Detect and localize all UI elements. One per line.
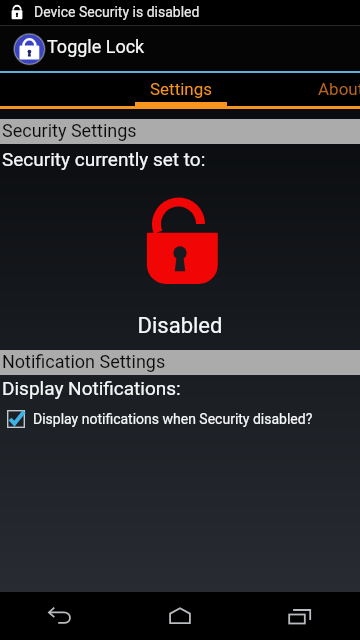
staticText: About: [318, 79, 360, 99]
button[interactable]: Home: [120, 592, 240, 640]
staticText: Notification Settings: [2, 351, 166, 372]
staticText: Security Settings: [2, 120, 137, 141]
button[interactable]: Display notifications when Security disa…: [0, 406, 360, 431]
button[interactable]: Settings: [102, 73, 261, 106]
staticText: Disabled: [0, 313, 360, 339]
staticText: Display Notifications:: [2, 377, 181, 399]
staticText: Toggle Lock: [47, 36, 145, 57]
staticText: Settings: [150, 79, 213, 99]
button[interactable]: About: [261, 73, 360, 106]
staticText: Security currently set to:: [2, 148, 206, 170]
button[interactable]: Toggle Lock: [0, 26, 360, 71]
button[interactable]: Back: [0, 592, 120, 640]
staticText: Device Security is disabled: [34, 4, 200, 20]
staticText: Display notifications when Security disa…: [33, 411, 313, 427]
button[interactable]: Recent apps: [240, 592, 360, 640]
